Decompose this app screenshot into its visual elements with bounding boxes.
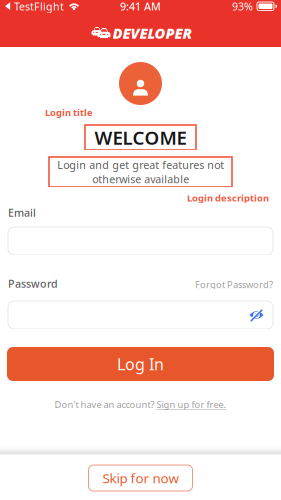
staticText: Password — [8, 276, 58, 291]
staticText: 93% — [232, 0, 253, 13]
staticText: Login description — [187, 192, 269, 204]
staticText: Log In — [117, 353, 164, 375]
button[interactable]: Log In — [7, 347, 274, 381]
button[interactable]: Show password — [249, 308, 264, 321]
staticText: Skip for now — [102, 469, 178, 487]
staticText: Forgot Password? — [195, 278, 273, 291]
staticText: Email — [8, 205, 36, 220]
staticText: 9:41 AM — [120, 0, 161, 13]
button[interactable]: Skip for now — [88, 465, 192, 491]
staticText: Login title — [45, 106, 93, 119]
staticText: DEVELOPER — [112, 23, 192, 43]
button[interactable]: Don't have an account? — [54, 399, 226, 410]
button[interactable]: Forgot Password? — [195, 278, 273, 291]
staticText: WELCOME — [94, 125, 186, 150]
staticText: Don't have an account? — [54, 398, 154, 411]
staticText: Login and get great features not otherwi… — [57, 158, 224, 186]
staticText: TestFlight — [14, 0, 64, 13]
staticText: Sign up for free. — [156, 398, 226, 411]
